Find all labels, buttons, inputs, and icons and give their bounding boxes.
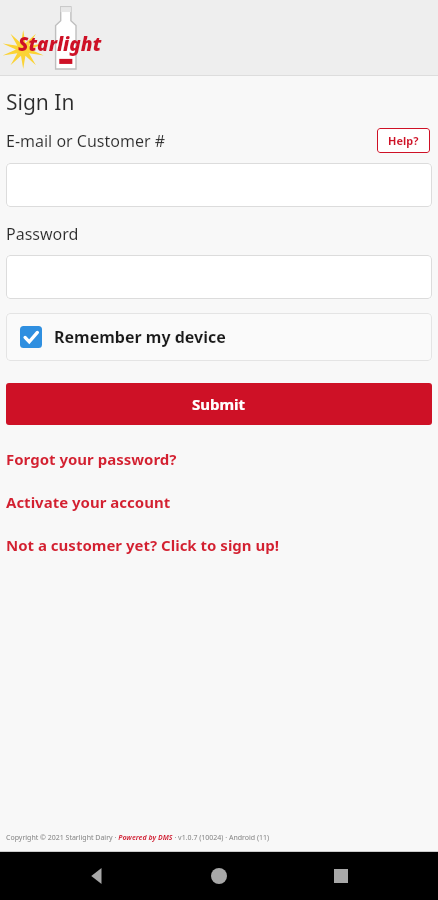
staticText: Starlight bbox=[18, 31, 102, 57]
button[interactable] bbox=[6, 255, 432, 299]
button[interactable]: Back bbox=[74, 852, 122, 900]
staticText: Activate your account bbox=[6, 492, 171, 512]
staticText: E-mail or Customer # bbox=[6, 130, 166, 152]
staticText: Copyright © 2021 Starlight Dairy · Power… bbox=[6, 833, 270, 843]
staticText: Password bbox=[6, 223, 79, 245]
button[interactable]: Activate your account bbox=[0, 492, 438, 512]
staticText: Sign In bbox=[6, 88, 75, 117]
button[interactable]: Submit bbox=[6, 383, 432, 425]
button[interactable]: Home bbox=[195, 852, 243, 900]
staticText: Forgot your password? bbox=[6, 449, 177, 469]
staticText: Remember my device bbox=[54, 326, 226, 348]
button[interactable]: Remember my device bbox=[6, 313, 432, 361]
button[interactable]: Help? bbox=[377, 128, 430, 153]
button[interactable]: Recent apps bbox=[317, 852, 365, 900]
staticText: Not a customer yet? Click to sign up! bbox=[6, 535, 279, 555]
button[interactable]: Forgot your password? bbox=[0, 449, 438, 469]
button[interactable] bbox=[6, 163, 432, 207]
staticText: Help? bbox=[388, 133, 419, 148]
staticText: Submit bbox=[192, 394, 246, 414]
button[interactable]: Not a customer yet? Click to sign up! bbox=[0, 535, 438, 555]
